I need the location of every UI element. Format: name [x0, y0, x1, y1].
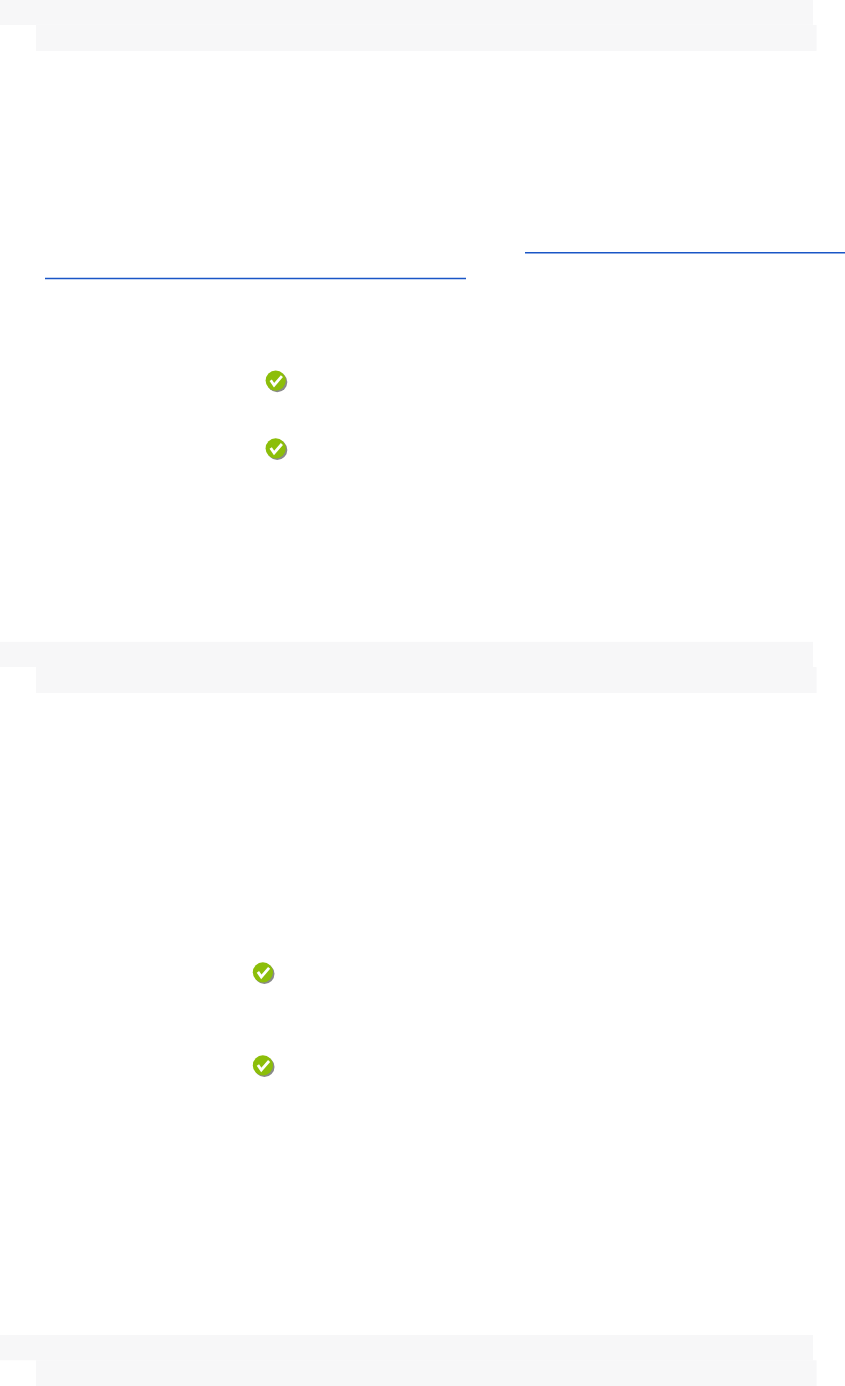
button[interactable]: Verified — [249, 1052, 275, 1078]
button[interactable]: Open link — [45, 255, 466, 281]
button[interactable]: Verified — [249, 959, 275, 985]
button[interactable]: Verified — [262, 367, 288, 393]
button[interactable]: Verified — [262, 435, 288, 461]
button[interactable]: Open link — [525, 229, 845, 255]
